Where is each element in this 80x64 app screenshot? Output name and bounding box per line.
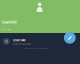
button[interactable]: @lawn0440 — [0, 36, 80, 48]
staticText: @lawn0440 — [13, 39, 25, 42]
staticText: en línea — [2, 28, 10, 31]
staticText: lawn0440 — [2, 20, 17, 24]
staticText: Fin de la lista de chats — [24, 47, 48, 50]
staticText: Mensajes guardados — [12, 42, 31, 45]
button[interactable]: New message — [64, 32, 76, 44]
